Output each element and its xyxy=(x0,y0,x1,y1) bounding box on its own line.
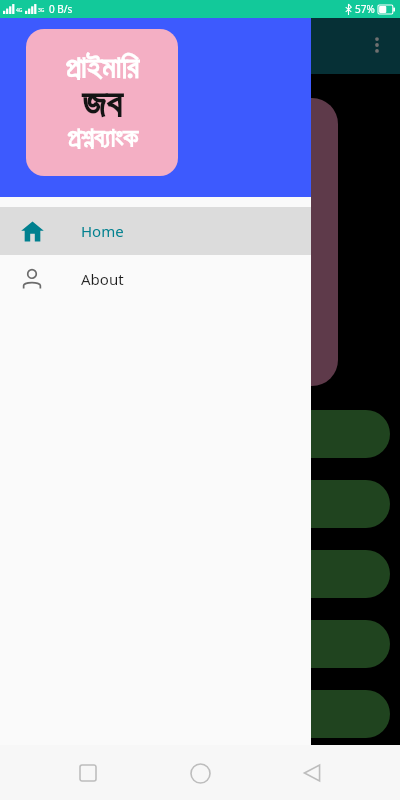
staticText: 3G xyxy=(38,7,45,14)
staticText: 57% xyxy=(355,2,375,16)
button[interactable] xyxy=(14,98,338,386)
staticText: 4G xyxy=(16,7,23,14)
button[interactable]: 2015 xyxy=(16,550,390,598)
button[interactable]: Home xyxy=(176,749,224,797)
staticText: প্রাইমারি xyxy=(65,54,139,84)
button[interactable]: 2015 xyxy=(16,690,390,738)
button[interactable]: 2019 xyxy=(16,410,390,458)
button[interactable]: 2015 xyxy=(16,620,390,668)
button[interactable]: More options xyxy=(364,32,390,58)
button[interactable]: 2015 xyxy=(16,480,390,528)
button[interactable]: Recent apps xyxy=(64,749,112,797)
button[interactable]: About xyxy=(0,255,311,303)
staticText: Home xyxy=(81,221,124,241)
button[interactable]: Home xyxy=(0,207,311,255)
staticText: 0 B/s xyxy=(49,2,73,16)
staticText: জব xyxy=(82,85,122,125)
staticText: About xyxy=(81,269,124,289)
staticText: প্রশ্নব্যাংক xyxy=(67,126,138,152)
button[interactable]: Back xyxy=(288,749,336,797)
